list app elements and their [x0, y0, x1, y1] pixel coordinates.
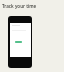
staticText: Track your time [2, 3, 37, 9]
